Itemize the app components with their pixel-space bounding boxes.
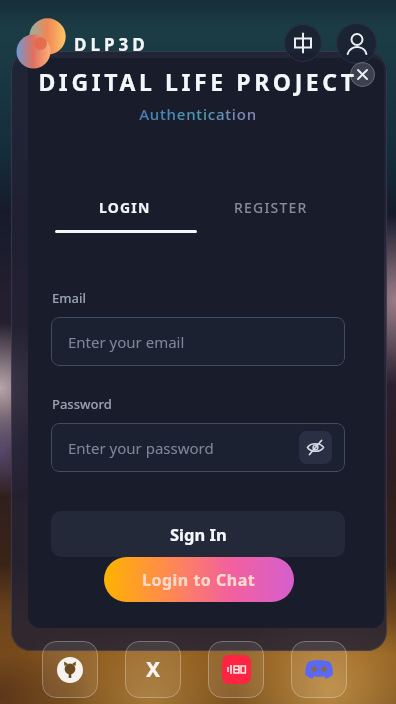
button[interactable]: Enter your password	[51, 423, 345, 472]
button[interactable]	[336, 23, 377, 64]
button[interactable]	[208, 641, 264, 698]
button[interactable]: Login to Chat	[104, 557, 294, 602]
staticText: Sign In	[170, 523, 227, 545]
staticText: DLP3D	[74, 33, 149, 56]
staticText: Enter your password	[68, 438, 214, 458]
button[interactable]	[350, 62, 375, 87]
staticText: X	[146, 655, 161, 684]
staticText: REGISTER	[234, 198, 308, 217]
staticText: DIGITAL LIFE PROJECT	[0, 66, 396, 97]
button[interactable]: REGISTER	[198, 186, 344, 228]
button[interactable]	[299, 431, 332, 464]
staticText: LOGIN	[99, 198, 151, 217]
button[interactable]: Enter your email	[51, 317, 345, 366]
button[interactable]	[284, 24, 322, 62]
staticText: Email	[52, 289, 87, 307]
button[interactable]: X	[125, 641, 181, 698]
staticText: Enter your email	[68, 332, 185, 352]
button[interactable]: LOGIN	[52, 186, 198, 228]
staticText: Password	[52, 395, 112, 413]
staticText: Login to Chat	[142, 569, 256, 591]
button[interactable]	[291, 641, 347, 698]
staticText: Authentication	[0, 104, 396, 124]
button[interactable]: Sign In	[51, 511, 345, 557]
button[interactable]	[42, 641, 98, 698]
